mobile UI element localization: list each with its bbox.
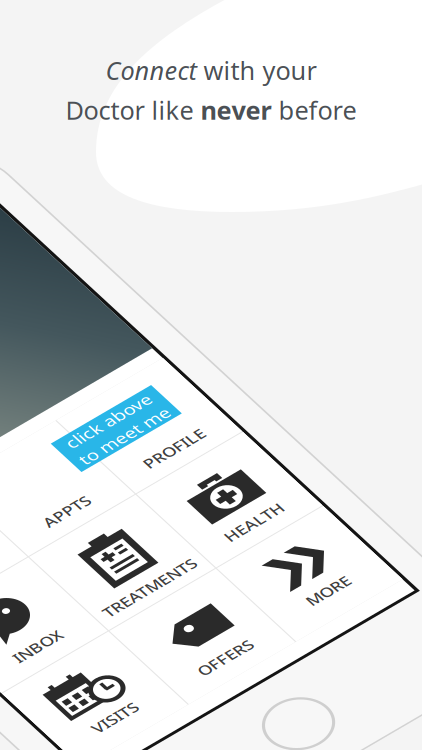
button[interactable]: INBOX — [27, 401, 133, 507]
staticText: APPTS — [165, 370, 209, 390]
staticText: Doctor like — [65, 93, 200, 127]
staticText: before — [271, 93, 356, 127]
staticText: Connect — [105, 53, 196, 87]
staticText: never — [200, 93, 271, 127]
staticText: TREATMENTS — [142, 481, 232, 500]
staticText: MORE — [273, 576, 314, 595]
staticText: FIND — [62, 370, 97, 390]
staticText: HEALTH — [266, 477, 322, 496]
button[interactable]: VISITS — [27, 508, 133, 614]
staticText: with your — [196, 53, 316, 87]
button[interactable]: HEALTH — [241, 401, 347, 507]
button[interactable]: TREATMENTS — [134, 401, 240, 507]
staticText: VISITS — [58, 578, 101, 597]
button[interactable]: OFFERS — [134, 508, 240, 614]
staticText: OFFERS — [161, 582, 213, 601]
button[interactable]: MORE — [241, 508, 347, 614]
